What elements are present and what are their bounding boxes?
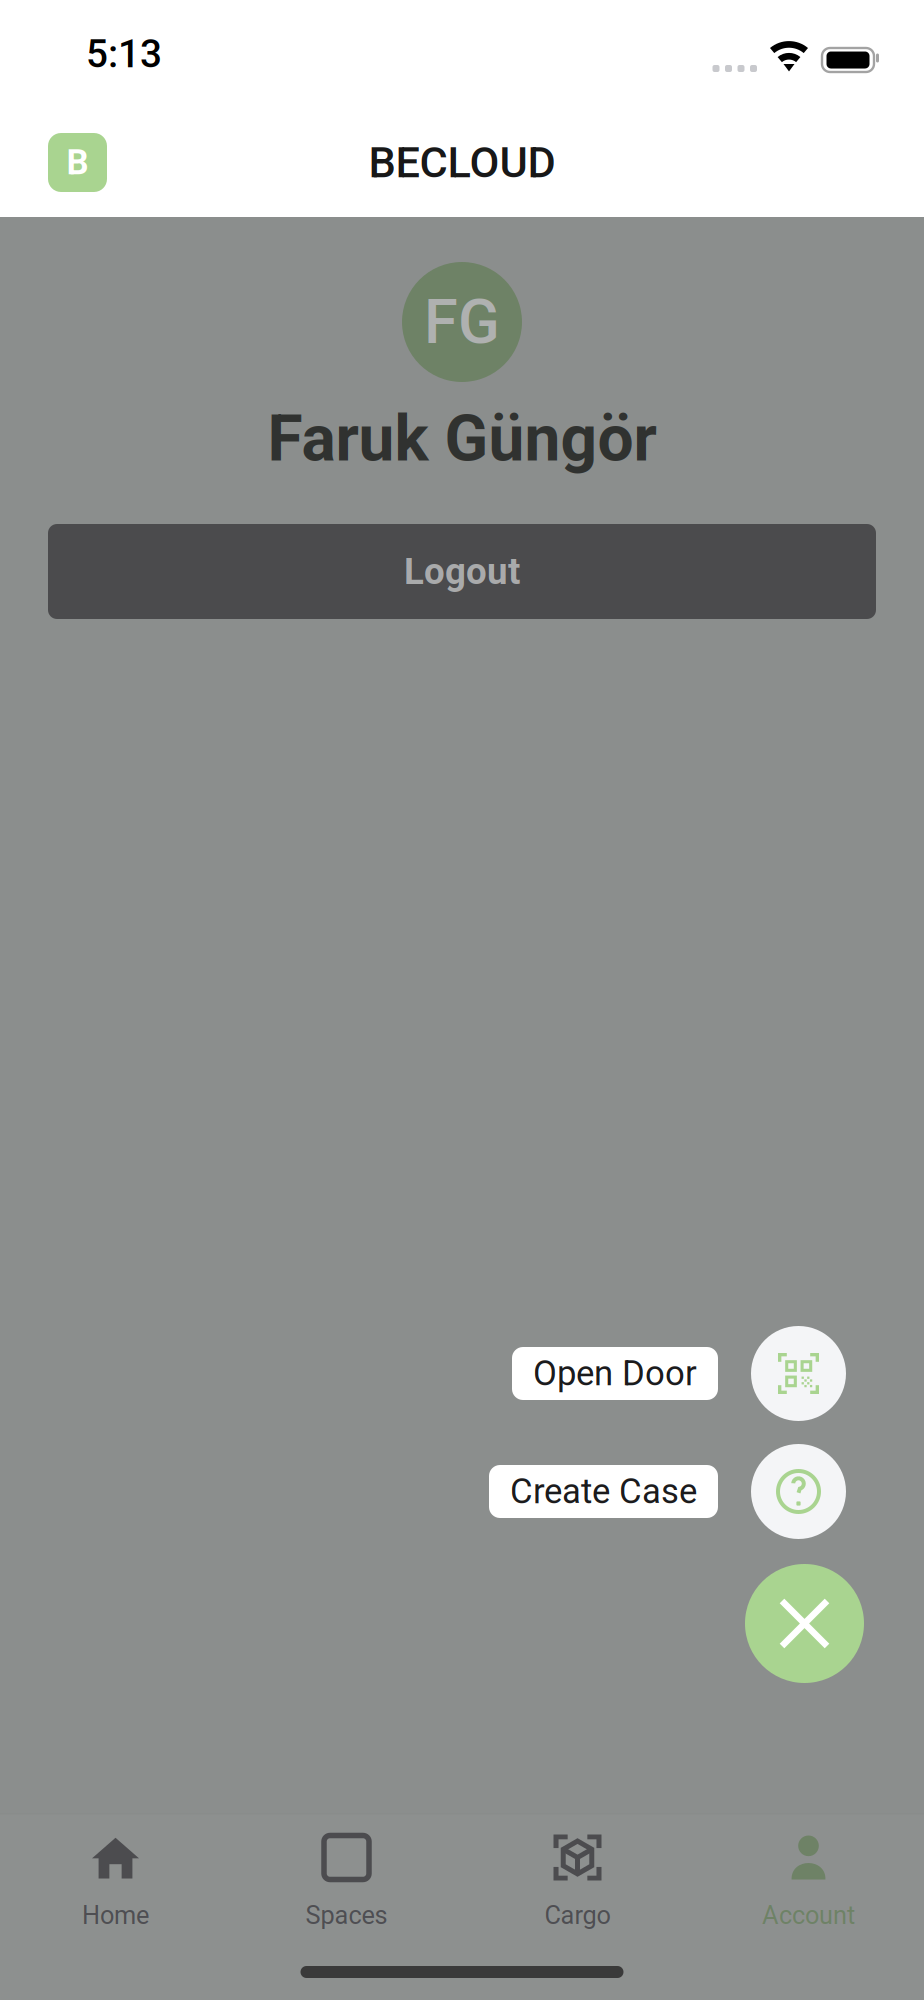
button[interactable]: Spaces: [231, 1814, 462, 1930]
staticText: Home: [82, 1900, 149, 1930]
staticText: Spaces: [305, 1900, 387, 1930]
staticText: Cargo: [544, 1900, 610, 1930]
staticText: Account: [762, 1900, 855, 1930]
button[interactable]: Close menu: [745, 1564, 864, 1683]
staticText: Create Case: [510, 1471, 697, 1512]
button[interactable]: Open Door: [751, 1326, 846, 1421]
staticText: FG: [424, 286, 500, 358]
button[interactable]: Open Door: [512, 1347, 718, 1400]
button[interactable]: Cargo: [462, 1814, 693, 1930]
button[interactable]: Home: [0, 1814, 231, 1930]
staticText: B: [66, 142, 88, 183]
button[interactable]: Account: [693, 1814, 924, 1930]
staticText: 5:13: [86, 31, 162, 77]
button[interactable]: Create Case: [751, 1444, 846, 1539]
staticText: Logout: [404, 550, 520, 593]
button[interactable]: Create Case: [489, 1465, 718, 1518]
staticText: BECLOUD: [368, 137, 555, 188]
staticText: Open Door: [533, 1353, 697, 1394]
button[interactable]: Logout: [48, 524, 876, 619]
staticText: Faruk Güngör: [267, 401, 656, 476]
button[interactable]: BeCloud: [48, 133, 107, 192]
